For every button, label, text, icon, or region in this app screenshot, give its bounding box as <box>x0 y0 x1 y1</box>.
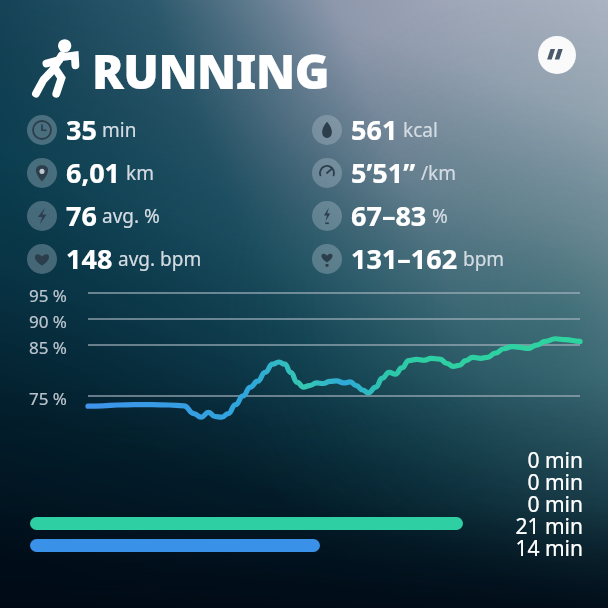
button[interactable]: 0 min <box>30 490 583 512</box>
staticText: 85 % <box>29 336 67 359</box>
staticText: 0 min <box>527 468 583 490</box>
staticText: 5’51” <box>351 154 416 191</box>
button[interactable]: Power range <box>312 194 594 237</box>
button[interactable]: 0 min <box>30 446 583 468</box>
button[interactable]: Pace <box>312 151 594 194</box>
staticText: kcal <box>403 117 438 143</box>
staticText: km <box>126 160 154 186</box>
staticText: 76 <box>66 197 97 234</box>
button[interactable]: Average power <box>27 194 308 237</box>
staticText: 35 <box>66 111 97 148</box>
staticText: % <box>432 203 448 229</box>
staticText: 0 min <box>527 490 583 512</box>
button[interactable]: 21 min <box>30 512 583 534</box>
button[interactable]: Duration <box>27 108 308 151</box>
staticText: 67–83 <box>351 197 427 234</box>
button[interactable]: Calories <box>312 108 594 151</box>
staticText: 21 min <box>515 512 583 534</box>
button[interactable]: Average heart rate <box>27 237 308 280</box>
staticText: 90 % <box>29 310 67 333</box>
staticText: 6,01 <box>66 154 121 191</box>
staticText: 561 <box>351 111 398 148</box>
staticText: 14 min <box>515 534 583 556</box>
staticText: /km <box>421 160 456 186</box>
staticText: avg. bpm <box>118 246 202 272</box>
staticText: 131–162 <box>351 240 458 277</box>
staticText: RUNNING <box>92 39 329 103</box>
button[interactable]: 14 min <box>30 534 583 556</box>
staticText: avg. % <box>102 203 160 229</box>
button[interactable]: Distance <box>27 151 308 194</box>
staticText: 0 min <box>527 446 583 468</box>
button[interactable]: 0 min <box>30 468 583 490</box>
staticText: 148 <box>66 240 113 277</box>
button[interactable]: Polar logo <box>538 36 576 74</box>
staticText: 75 % <box>29 387 67 410</box>
button[interactable]: Heart rate graph <box>0 284 608 444</box>
staticText: min <box>102 117 137 143</box>
staticText: 95 % <box>29 284 67 307</box>
staticText: bpm <box>463 246 505 272</box>
button[interactable]: Heart rate range <box>312 237 594 280</box>
